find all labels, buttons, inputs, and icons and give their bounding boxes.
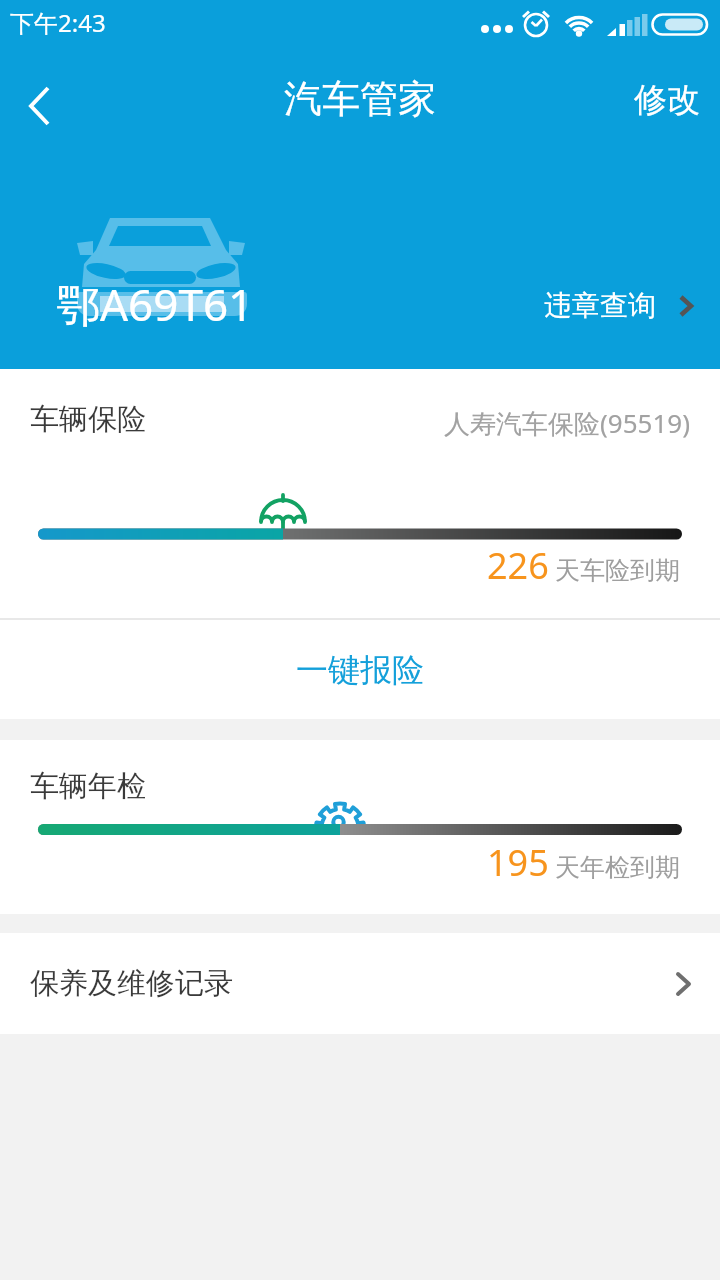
staticText: 保养及维修记录 <box>30 965 233 1002</box>
staticText: 车辆年检 <box>30 768 146 805</box>
staticText: 一键报险 <box>296 650 424 690</box>
button[interactable]: 一键报险 <box>0 620 720 719</box>
staticText: 汽车管家 <box>284 75 436 123</box>
button[interactable]: 修改 <box>634 79 700 121</box>
staticText: 下午2:43 <box>10 6 106 39</box>
staticText: 修改 <box>634 79 700 121</box>
staticText: 人寿汽车保险(95519) <box>444 405 690 441</box>
staticText: 226 <box>487 541 549 590</box>
button[interactable]: 保养及维修记录 <box>0 933 720 1034</box>
staticText: 车辆保险 <box>30 401 146 438</box>
staticText: 违章查询 <box>544 288 656 323</box>
staticText: 195 <box>487 838 549 887</box>
staticText: 天年检到期 <box>555 852 680 883</box>
staticText: 鄂A69T61 <box>56 274 254 334</box>
staticText: 天车险到期 <box>555 555 680 586</box>
button[interactable] <box>8 74 72 138</box>
button[interactable]: 违章查询 <box>544 288 694 323</box>
